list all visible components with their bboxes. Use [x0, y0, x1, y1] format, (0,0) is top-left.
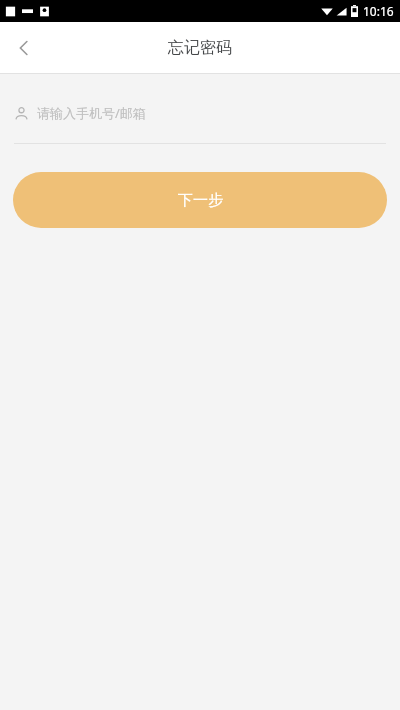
staticText: 下一步: [178, 191, 223, 210]
button[interactable]: Back: [0, 24, 48, 72]
other: Account: [14, 106, 29, 121]
staticText: 请输入手机号/邮箱: [37, 104, 146, 122]
staticText: 10:16: [363, 3, 394, 19]
button[interactable]: 下一步: [13, 172, 387, 228]
button[interactable]: Account: [14, 98, 386, 128]
staticText: 忘记密码: [168, 38, 232, 58]
